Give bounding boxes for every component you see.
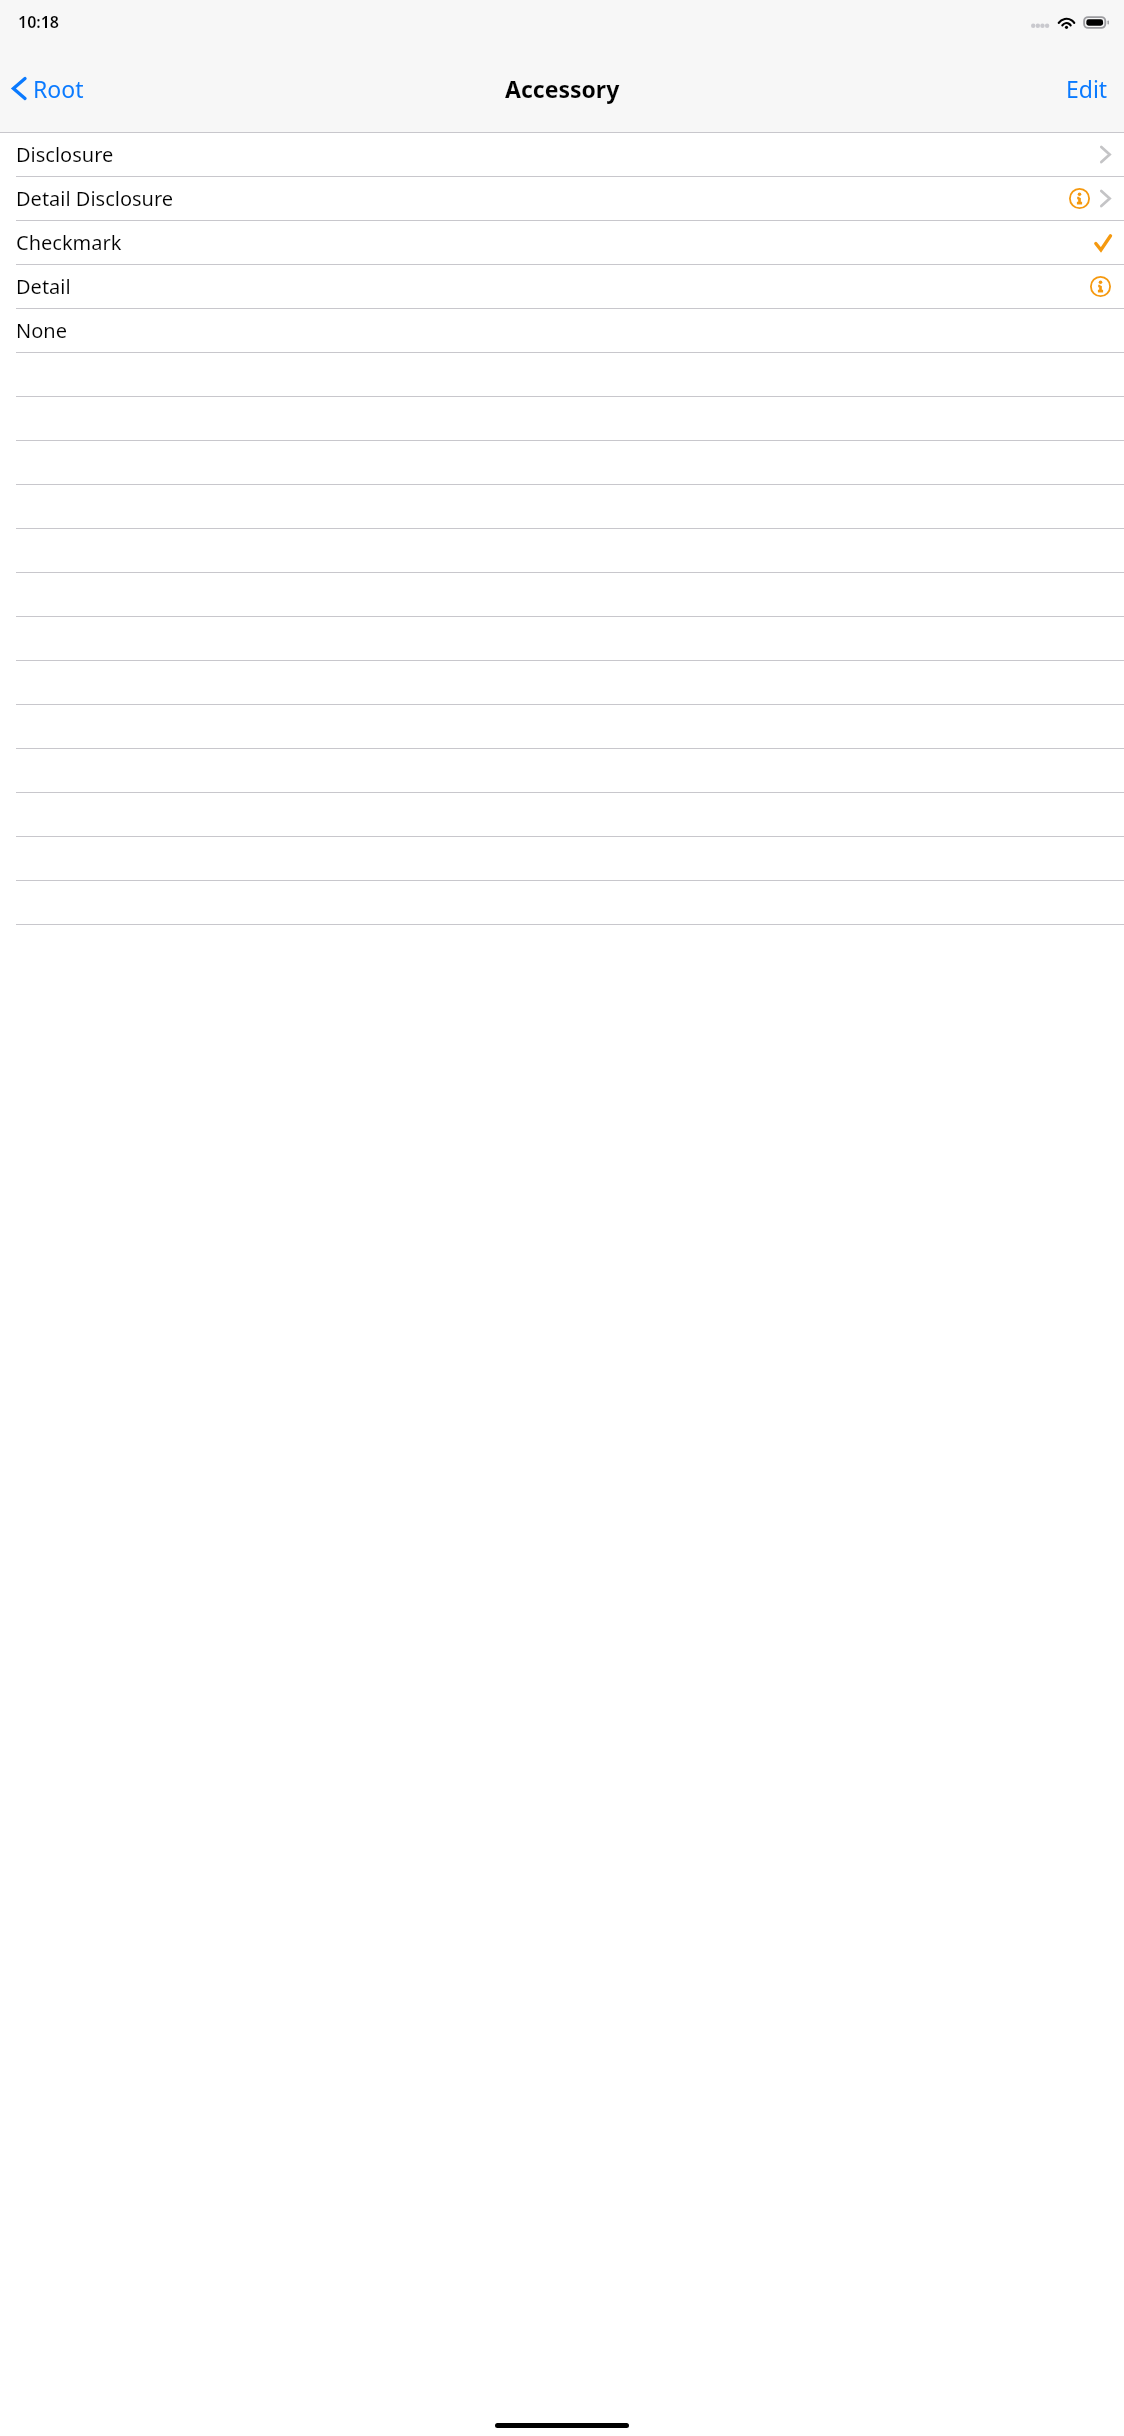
- button[interactable]: Disclosure: [0, 133, 1124, 177]
- staticText: Root: [33, 73, 84, 104]
- button[interactable]: None: [0, 309, 1124, 353]
- other: Selected: [1095, 235, 1111, 251]
- staticText: Detail Disclosure: [16, 185, 174, 212]
- staticText: 10:18: [18, 11, 60, 33]
- button[interactable]: Detail Disclosure: [0, 177, 1124, 221]
- staticText: Edit: [1066, 73, 1108, 104]
- staticText: Checkmark: [16, 229, 122, 256]
- staticText: None: [16, 317, 67, 344]
- button[interactable]: Checkmark: [0, 221, 1124, 265]
- button[interactable]: Root: [0, 44, 96, 132]
- staticText: Accessory: [505, 73, 620, 104]
- button[interactable]: Edit: [1050, 44, 1124, 132]
- staticText: Detail: [16, 273, 71, 300]
- staticText: Disclosure: [16, 141, 114, 168]
- button[interactable]: Detail: [0, 265, 1124, 309]
- other: More info: [1090, 276, 1111, 297]
- other: More info: [1069, 188, 1090, 209]
